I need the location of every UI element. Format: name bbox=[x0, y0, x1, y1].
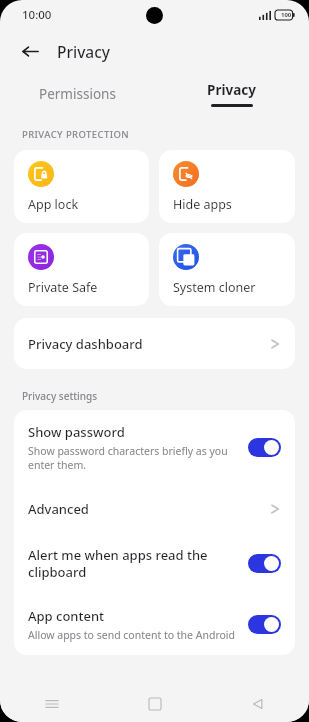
button[interactable]: Toggle on bbox=[248, 554, 281, 573]
button[interactable]: Back bbox=[206, 685, 309, 722]
button[interactable]: Privacy bbox=[154, 72, 309, 116]
staticText: App content bbox=[28, 607, 105, 625]
button[interactable]: System cloner bbox=[159, 233, 295, 306]
staticText: Privacy bbox=[57, 41, 111, 62]
staticText: Allow apps to send content to the Androi… bbox=[28, 628, 236, 642]
button[interactable]: Back bbox=[14, 35, 46, 67]
button[interactable]: Home bbox=[103, 685, 206, 722]
staticText: Permissions bbox=[39, 85, 116, 103]
staticText: Privacy bbox=[207, 81, 256, 99]
staticText: Alert me when apps read the clipboard bbox=[28, 546, 208, 581]
button[interactable]: Advanced bbox=[14, 485, 295, 533]
button[interactable]: App content bbox=[14, 594, 295, 655]
button[interactable]: Private Safe bbox=[14, 233, 149, 306]
staticText: 10:00 bbox=[22, 7, 52, 23]
button[interactable]: Privacy dashboard bbox=[14, 318, 295, 369]
staticText: App lock bbox=[28, 196, 79, 213]
button[interactable]: Permissions bbox=[0, 72, 154, 116]
staticText: 100 bbox=[281, 11, 292, 19]
staticText: Show password bbox=[28, 423, 125, 441]
button[interactable]: Hide apps bbox=[159, 150, 295, 223]
button[interactable]: Recents bbox=[0, 685, 103, 722]
staticText: System cloner bbox=[173, 279, 256, 296]
staticText: Private Safe bbox=[28, 279, 98, 296]
button[interactable]: Show password bbox=[14, 410, 295, 485]
staticText: Advanced bbox=[28, 500, 270, 518]
staticText: Show password characters briefly as you … bbox=[28, 444, 228, 472]
staticText: Privacy settings bbox=[22, 389, 98, 403]
button[interactable]: Alert me when apps read the clipboard bbox=[14, 533, 295, 594]
staticText: Hide apps bbox=[173, 196, 232, 213]
button[interactable]: App lock bbox=[14, 150, 149, 223]
staticText: Privacy dashboard bbox=[28, 335, 270, 353]
button[interactable]: Toggle on bbox=[248, 615, 281, 634]
button[interactable]: Toggle on bbox=[248, 438, 281, 457]
staticText: PRIVACY PROTECTION bbox=[22, 128, 130, 141]
